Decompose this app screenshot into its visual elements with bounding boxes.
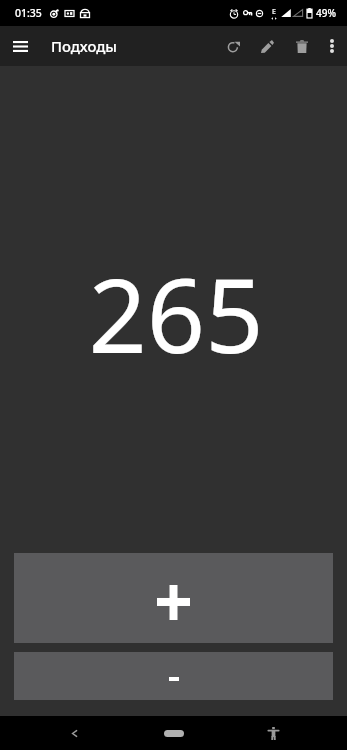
button[interactable]: Menu [0,26,40,66]
staticText: E [272,7,276,17]
button[interactable] [14,652,333,700]
button[interactable]: More options [318,26,345,66]
button[interactable]: Home [148,716,199,750]
staticText: Подходы [51,36,117,56]
button[interactable]: Edit [250,26,285,66]
staticText: 265 [88,244,264,383]
button[interactable]: Delete [285,26,318,66]
button[interactable] [14,553,333,643]
button[interactable]: Back [0,716,148,750]
staticText: 49% [316,6,336,20]
button[interactable]: Refresh [217,26,250,66]
button[interactable]: Accessibility [199,716,347,750]
staticText: 01:35 [15,6,42,20]
